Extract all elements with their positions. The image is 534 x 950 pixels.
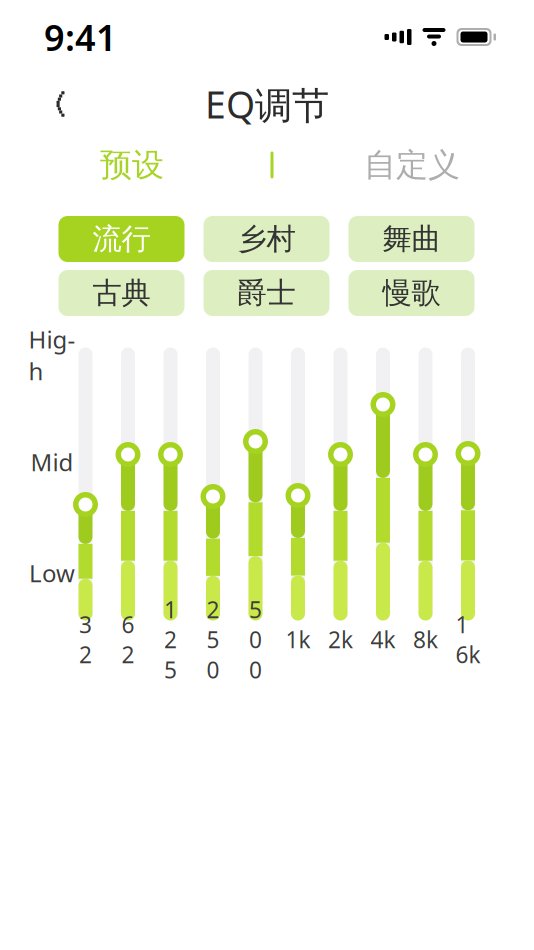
button[interactable]: 爵士: [203, 270, 329, 316]
button[interactable]: 16k: [455, 347, 480, 650]
button[interactable]: Back: [35, 81, 81, 127]
staticText: 乡村: [237, 221, 295, 257]
button[interactable]: 自定义: [352, 144, 472, 186]
button[interactable]: 流行: [58, 216, 184, 262]
staticText: 爵士: [237, 275, 295, 311]
button[interactable]: 4k: [370, 347, 395, 650]
staticText: 预设: [100, 145, 164, 185]
button[interactable]: 乡村: [203, 216, 329, 262]
button[interactable]: 2k: [328, 347, 353, 650]
button[interactable]: 500: [243, 347, 268, 650]
button[interactable]: 62: [115, 347, 140, 650]
staticText: 自定义: [364, 145, 460, 185]
button[interactable]: 预设: [72, 144, 192, 186]
button[interactable]: 舞曲: [348, 216, 474, 262]
staticText: 16k: [455, 609, 480, 670]
staticText: 62: [121, 609, 134, 670]
staticText: 1k: [285, 624, 310, 654]
staticText: Low: [29, 557, 75, 589]
staticText: 舞曲: [382, 221, 440, 257]
button[interactable]: 32: [73, 347, 98, 650]
button[interactable]: 250: [200, 347, 225, 650]
button[interactable]: 1k: [285, 347, 310, 650]
staticText: 2k: [328, 624, 353, 654]
staticText: 500: [249, 594, 262, 685]
staticText: 9:41: [44, 13, 117, 61]
staticText: 流行: [92, 221, 150, 257]
staticText: 125: [164, 594, 177, 685]
staticText: 32: [79, 609, 92, 670]
staticText: Mid: [30, 446, 73, 478]
button[interactable]: 8k: [413, 347, 438, 650]
button[interactable]: 慢歌: [348, 270, 474, 316]
staticText: High: [28, 323, 75, 387]
button[interactable]: 古典: [58, 270, 184, 316]
staticText: 250: [206, 594, 219, 685]
button[interactable]: 125: [158, 347, 183, 650]
staticText: 古典: [92, 275, 150, 311]
staticText: 慢歌: [382, 275, 440, 311]
staticText: 4k: [370, 624, 395, 654]
staticText: 8k: [413, 624, 438, 654]
staticText: EQ调节: [205, 79, 329, 129]
